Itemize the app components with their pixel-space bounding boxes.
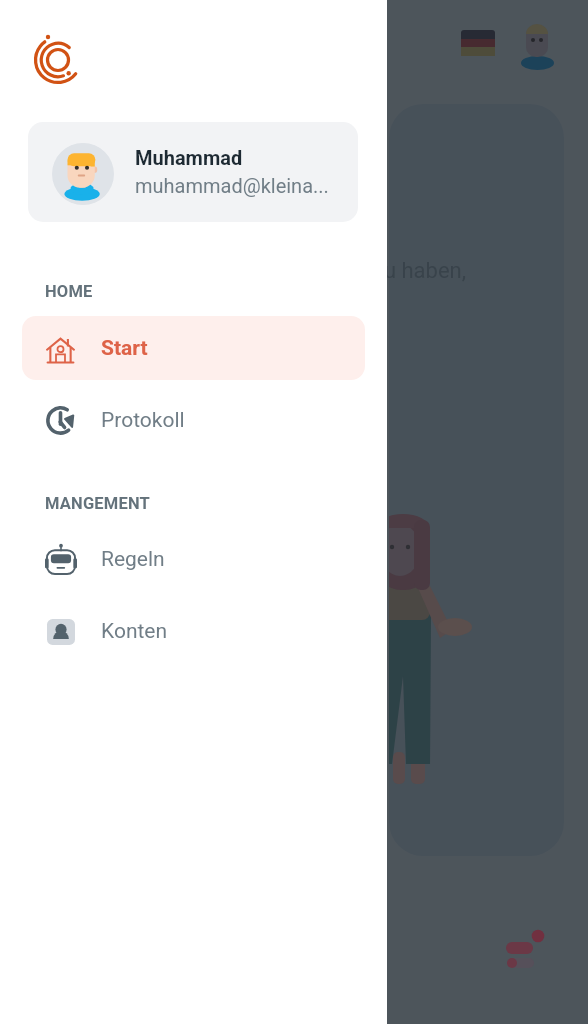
staticText: HOME: [45, 282, 93, 301]
staticText: Start: [101, 336, 148, 361]
staticText: Regeln: [101, 547, 165, 572]
button[interactable]: Regeln: [22, 527, 365, 591]
button[interactable]: Start: [22, 316, 365, 380]
staticText: Protokoll: [101, 408, 185, 433]
staticText: Muhammad: [135, 146, 243, 169]
button[interactable]: Protokoll: [22, 388, 365, 452]
button[interactable]: Konten: [22, 599, 365, 663]
staticText: zu haben,: [373, 258, 467, 284]
staticText: MANGEMENT: [45, 494, 151, 513]
button[interactable]: Muhammad: [28, 122, 358, 222]
staticText: Konten: [101, 619, 168, 644]
staticText: muhammad@kleina...: [135, 174, 329, 197]
